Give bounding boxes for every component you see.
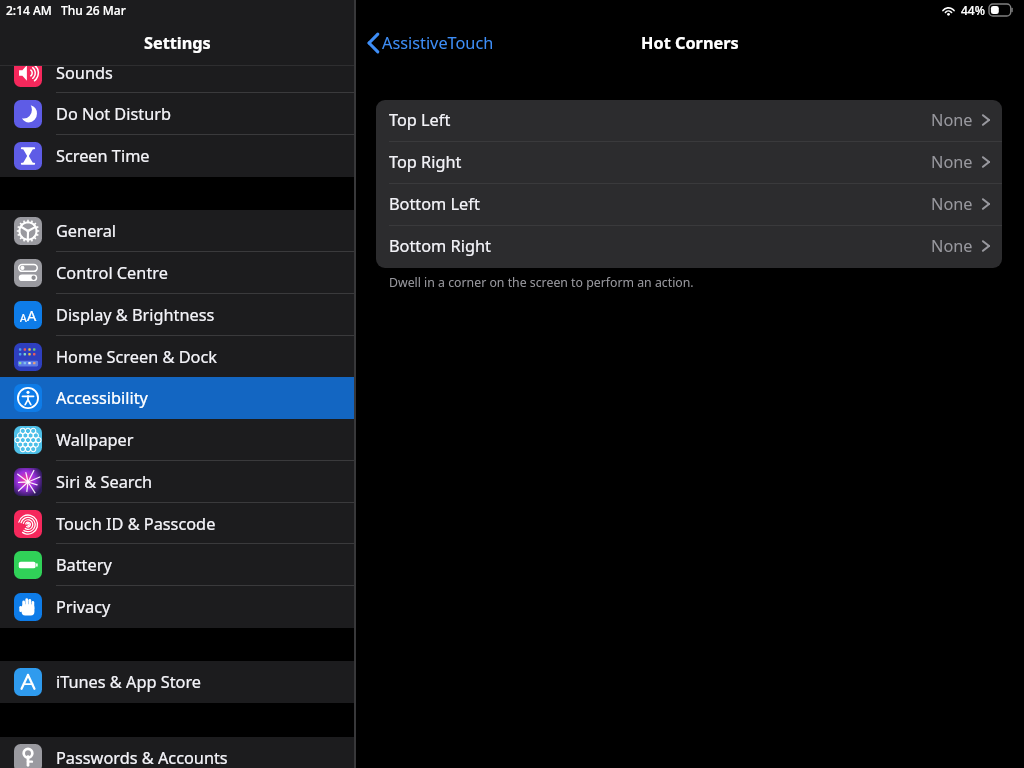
button[interactable]: Home Screen & Dock bbox=[0, 336, 354, 378]
staticText: AssistiveTouch bbox=[382, 32, 494, 54]
button[interactable]: Back to AssistiveTouch bbox=[367, 20, 494, 66]
button[interactable]: Bottom Left bbox=[376, 184, 1002, 226]
staticText: iTunes & App Store bbox=[56, 671, 201, 693]
button[interactable]: Do Not Disturb bbox=[0, 93, 354, 135]
button[interactable]: Screen Time bbox=[0, 135, 354, 177]
staticText: Battery bbox=[56, 554, 112, 576]
staticText: Bottom Right bbox=[389, 235, 491, 257]
staticText: Privacy bbox=[56, 596, 111, 618]
button[interactable]: iTunes & App Store bbox=[0, 661, 354, 703]
button[interactable]: Battery bbox=[0, 544, 354, 586]
staticText: Accessibility bbox=[56, 387, 148, 409]
staticText: None bbox=[931, 193, 973, 215]
staticText: None bbox=[931, 109, 973, 131]
button[interactable]: Top Left bbox=[376, 100, 1002, 142]
staticText: Thu 26 Mar bbox=[61, 2, 126, 18]
staticText: Touch ID & Passcode bbox=[56, 513, 216, 535]
staticText: Top Right bbox=[389, 151, 462, 173]
button[interactable]: General bbox=[0, 210, 354, 252]
staticText: A bbox=[20, 311, 27, 325]
button[interactable]: A bbox=[0, 294, 354, 336]
staticText: Siri & Search bbox=[56, 471, 153, 493]
staticText: 44% bbox=[961, 2, 985, 18]
button[interactable]: Top Right bbox=[376, 142, 1002, 184]
staticText: Hot Corners bbox=[641, 32, 739, 54]
staticText: Passwords & Accounts bbox=[56, 747, 228, 768]
button[interactable]: Wallpaper bbox=[0, 419, 354, 461]
button[interactable]: Sounds bbox=[0, 66, 354, 94]
staticText: Dwell in a corner on the screen to perfo… bbox=[389, 274, 694, 291]
staticText: Bottom Left bbox=[389, 193, 480, 215]
button[interactable]: Passwords & Accounts bbox=[0, 737, 354, 768]
staticText: Top Left bbox=[389, 109, 451, 131]
staticText: A bbox=[27, 305, 37, 325]
staticText: Screen Time bbox=[56, 145, 150, 167]
staticText: Settings bbox=[144, 32, 211, 54]
staticText: Sounds bbox=[56, 66, 113, 84]
staticText: None bbox=[931, 151, 973, 173]
staticText: General bbox=[56, 220, 117, 242]
staticText: Do Not Disturb bbox=[56, 103, 171, 125]
staticText: Home Screen & Dock bbox=[56, 346, 217, 368]
button[interactable]: Siri & Search bbox=[0, 461, 354, 503]
staticText: 2:14 AM bbox=[6, 2, 52, 18]
staticText: None bbox=[931, 235, 973, 257]
button[interactable]: Privacy bbox=[0, 586, 354, 628]
button[interactable]: Touch ID & Passcode bbox=[0, 503, 354, 545]
staticText: Control Centre bbox=[56, 262, 168, 284]
button[interactable]: Control Centre bbox=[0, 252, 354, 294]
staticText: Wallpaper bbox=[56, 429, 134, 451]
button[interactable]: Bottom Right bbox=[376, 226, 1002, 268]
button[interactable]: Accessibility bbox=[0, 377, 354, 419]
staticText: Display & Brightness bbox=[56, 304, 215, 326]
